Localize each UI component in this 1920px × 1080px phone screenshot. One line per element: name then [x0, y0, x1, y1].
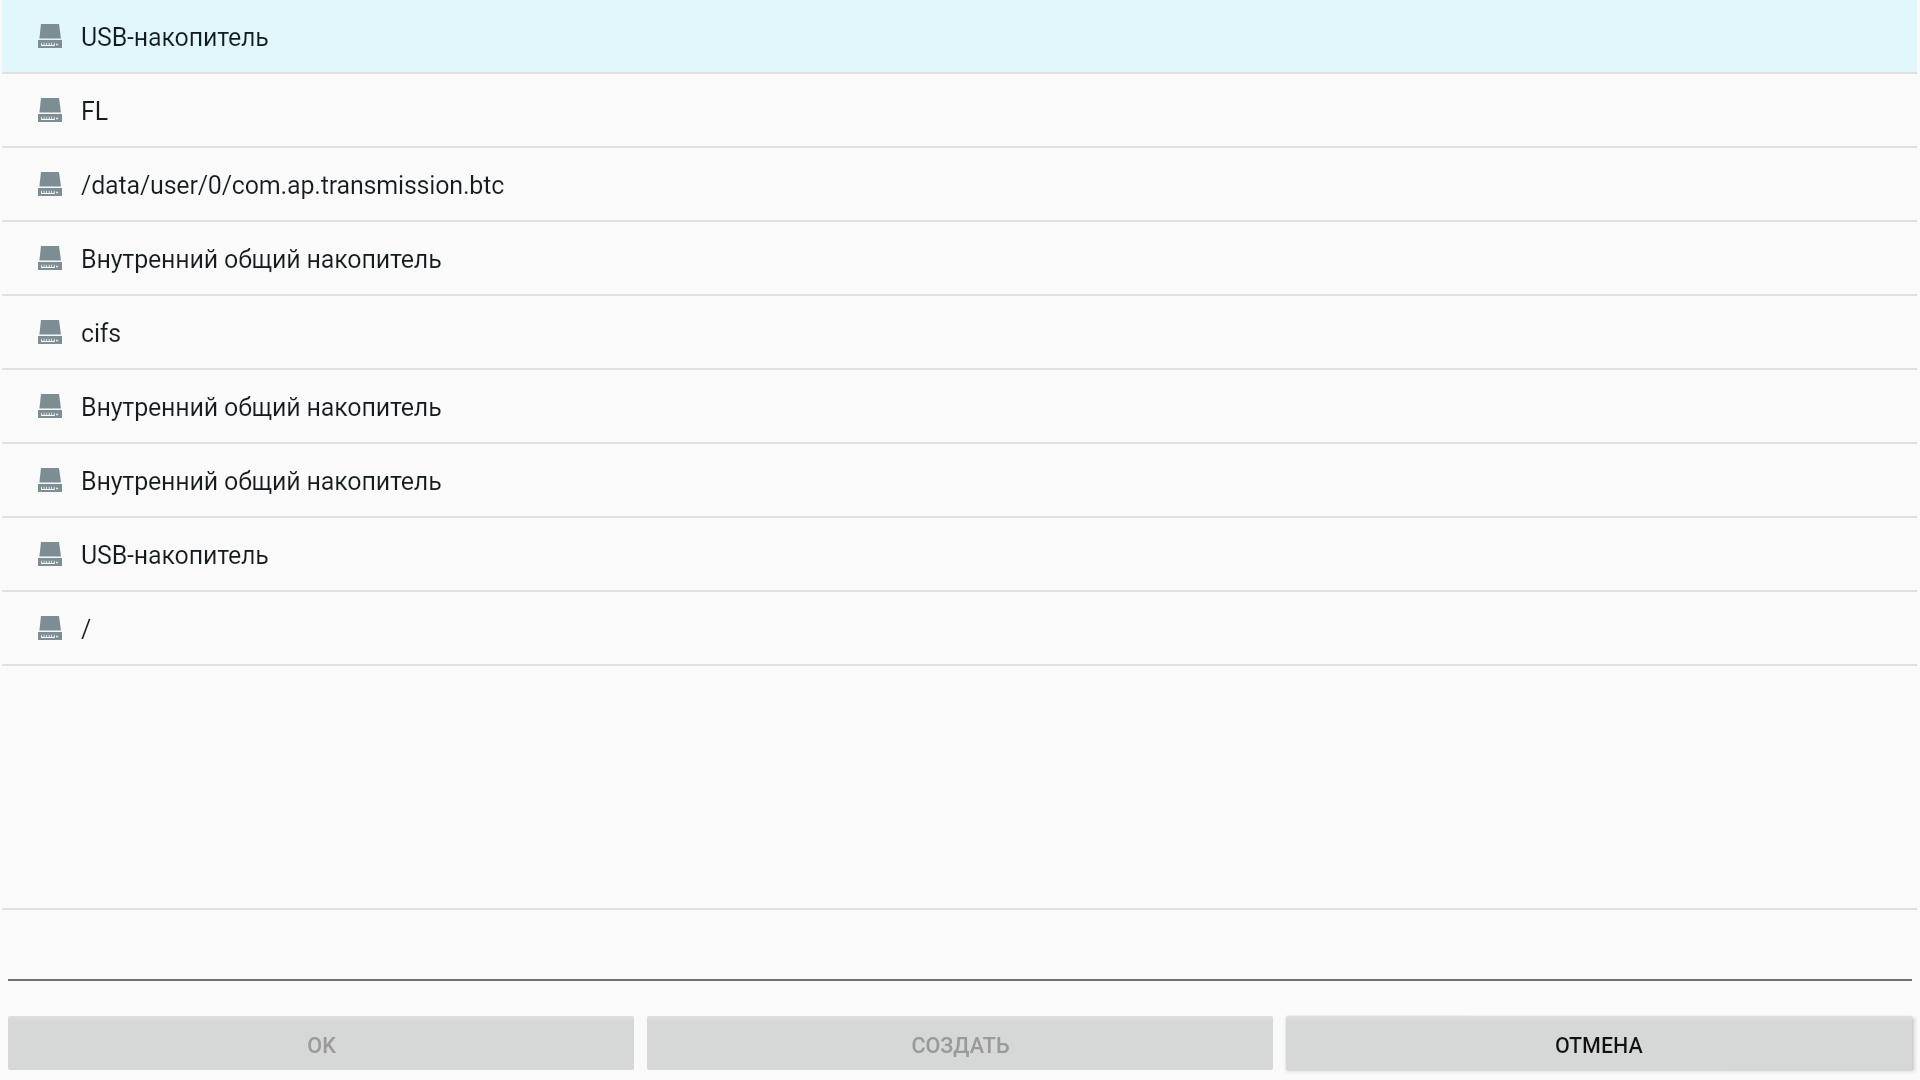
staticText: /	[81, 615, 92, 644]
staticText: СОЗДАТЬ	[911, 1033, 1010, 1058]
staticText: Внутренний общий накопитель	[81, 245, 442, 274]
staticText: Внутренний общий накопитель	[81, 467, 442, 496]
staticText: cifs	[81, 319, 122, 348]
button[interactable]: Внутренний общий накопитель	[2, 370, 1917, 444]
button[interactable]: ОТМЕНА	[1286, 1016, 1912, 1070]
button[interactable]: /data/user/0/com.ap.transmission.btc	[2, 148, 1917, 222]
button[interactable]: Внутренний общий накопитель	[2, 444, 1917, 518]
button[interactable]: OK	[8, 1016, 634, 1070]
button[interactable]: /	[2, 592, 1917, 666]
staticText: Внутренний общий накопитель	[81, 393, 442, 422]
button[interactable]: USB-накопитель	[2, 518, 1917, 592]
staticText: USB-накопитель	[81, 23, 269, 52]
button[interactable]: Внутренний общий накопитель	[2, 222, 1917, 296]
staticText: OK	[307, 1033, 336, 1058]
staticText: /data/user/0/com.ap.transmission.btc	[81, 171, 505, 200]
staticText: USB-накопитель	[81, 541, 269, 570]
button[interactable]: USB-накопитель	[2, 0, 1917, 74]
button[interactable]: cifs	[2, 296, 1917, 370]
staticText: FL	[81, 97, 108, 126]
staticText: ОТМЕНА	[1555, 1033, 1643, 1058]
button[interactable]: СОЗДАТЬ	[647, 1016, 1273, 1070]
button[interactable]: FL	[2, 74, 1917, 148]
